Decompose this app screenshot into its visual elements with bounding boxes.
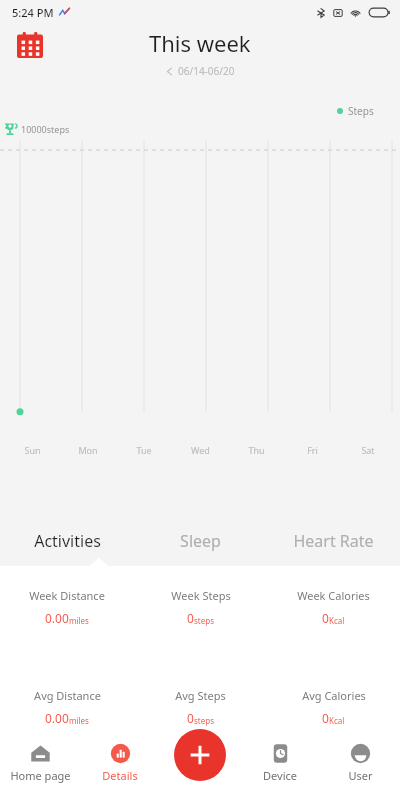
button[interactable]: Add	[174, 729, 226, 781]
button[interactable]: Week Steps	[134, 588, 267, 626]
staticText: steps	[194, 715, 214, 726]
button[interactable]: Calendar	[17, 32, 43, 58]
button[interactable]: Heart Rate	[267, 516, 400, 566]
staticText: 0	[322, 610, 329, 626]
staticText: miles	[69, 715, 89, 726]
staticText: 0.00	[45, 610, 69, 626]
staticText: This week	[149, 28, 251, 58]
button[interactable]: Avg Steps	[134, 688, 267, 726]
staticText: 0	[187, 710, 194, 726]
staticText: Week Steps	[171, 588, 231, 603]
button[interactable]: Week Calories	[267, 588, 400, 626]
button[interactable]: Avg Calories	[267, 688, 400, 726]
staticText: Steps	[348, 104, 374, 118]
staticText: Kcal	[329, 715, 345, 726]
staticText: Sleep	[180, 530, 221, 552]
staticText: Activities	[34, 530, 101, 552]
staticText: miles	[69, 615, 89, 626]
staticText: Mon	[78, 444, 98, 456]
button[interactable]: Avg Distance	[0, 688, 134, 726]
staticText: 06/14-06/20	[178, 64, 235, 78]
staticText: Fri	[307, 444, 318, 456]
staticText: 5:24 PM	[12, 5, 54, 20]
staticText: User	[348, 768, 373, 783]
staticText: Home page	[10, 768, 71, 783]
button[interactable]: 06/14-06/20	[165, 64, 235, 78]
staticText: Thu	[248, 444, 265, 456]
button[interactable]: Activities	[0, 516, 134, 566]
staticText: Sun	[24, 444, 41, 456]
staticText: 0	[322, 710, 329, 726]
button[interactable]: Home page	[0, 743, 80, 800]
button[interactable]: User	[320, 743, 400, 800]
staticText: Avg Distance	[34, 688, 101, 703]
staticText: 0.00	[45, 710, 69, 726]
staticText: Device	[263, 768, 297, 783]
staticText: Week Calories	[297, 588, 370, 603]
staticText: Week Distance	[29, 588, 105, 603]
staticText: steps	[194, 615, 214, 626]
staticText: 0	[187, 610, 194, 626]
staticText: Sat	[361, 444, 375, 456]
staticText: Avg Steps	[175, 688, 226, 703]
button[interactable]: Device	[240, 743, 320, 800]
staticText: Avg Calories	[302, 688, 366, 703]
staticText: Heart Rate	[293, 530, 374, 552]
staticText: Wed	[191, 444, 210, 456]
staticText: Details	[102, 768, 138, 783]
staticText: Kcal	[329, 615, 345, 626]
button[interactable]: Sleep	[134, 516, 267, 566]
button[interactable]: Details	[80, 743, 160, 800]
staticText: 10000steps	[21, 123, 70, 135]
button[interactable]: Week Distance	[0, 588, 134, 626]
staticText: Tue	[136, 444, 152, 456]
